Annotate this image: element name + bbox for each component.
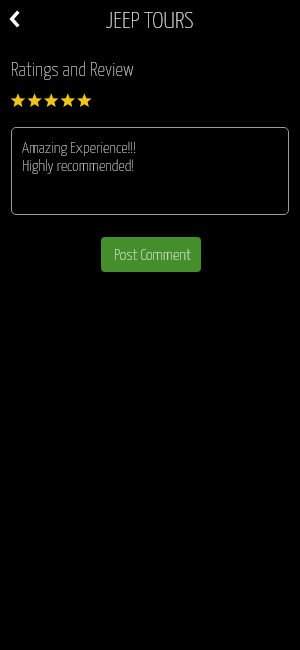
staticText: Post Comment: [114, 248, 191, 263]
button[interactable]: Back: [0, 2, 32, 36]
staticText: Amazing Experience!!!: [22, 141, 137, 156]
staticText: Highly recommended!: [22, 159, 135, 174]
staticText: Ratings and Review: [11, 62, 134, 80]
button[interactable]: Amazing Experience!!!: [11, 127, 289, 215]
staticText: JEEP TOURS: [106, 10, 194, 32]
button[interactable]: Post Comment: [101, 237, 201, 272]
button[interactable]: Rating: 5 of 5 stars: [10, 93, 96, 110]
